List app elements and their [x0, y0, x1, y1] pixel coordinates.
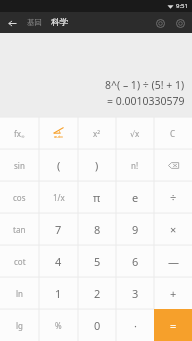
button[interactable]: e	[116, 181, 154, 213]
button[interactable]: ÷	[154, 181, 192, 213]
staticText: 9	[132, 222, 139, 237]
staticText: ln	[16, 288, 24, 299]
staticText: cot	[14, 256, 26, 267]
staticText: 4	[55, 254, 62, 269]
button[interactable]: 1/x	[39, 181, 78, 213]
staticText: —	[168, 254, 179, 269]
button[interactable]: cot	[0, 245, 39, 277]
button[interactable]: ln	[0, 277, 39, 309]
staticText: 8^( – 1) ÷ (5! + 1)	[105, 78, 185, 92]
staticText: 科学	[51, 17, 68, 28]
staticText: √x	[130, 128, 140, 139]
button[interactable]: 6	[116, 245, 154, 277]
staticText: 9:51	[176, 2, 188, 10]
button[interactable]: tan	[0, 213, 39, 245]
staticText: ∞	[21, 134, 25, 139]
button[interactable]: sin	[0, 149, 39, 181]
button[interactable]: Back	[4, 15, 20, 31]
staticText: cos	[13, 192, 26, 203]
button[interactable]: Backspace	[154, 149, 192, 181]
button[interactable]: fx	[0, 117, 39, 149]
button[interactable]: 3	[116, 277, 154, 309]
button[interactable]: lg	[0, 309, 39, 341]
button[interactable]: ·	[116, 309, 154, 341]
staticText: auto	[54, 134, 63, 139]
staticText: x²	[93, 128, 101, 139]
button[interactable]: Angle unit	[39, 117, 78, 149]
button[interactable]: +	[154, 277, 192, 309]
staticText: ×	[170, 222, 177, 237]
staticText: tan	[13, 224, 26, 235]
staticText: π	[93, 190, 101, 205]
staticText: ·	[134, 318, 137, 333]
staticText: lg	[16, 320, 23, 331]
staticText: =	[170, 318, 177, 333]
staticText: )	[95, 158, 99, 173]
button[interactable]: 4	[39, 245, 78, 277]
staticText: +	[170, 286, 177, 301]
button[interactable]: ×	[154, 213, 192, 245]
button[interactable]: 基回	[24, 15, 45, 30]
staticText: 7	[55, 222, 62, 237]
button[interactable]: C	[154, 117, 192, 149]
staticText: e	[132, 190, 139, 205]
staticText: fx	[14, 128, 21, 139]
staticText: %	[55, 320, 62, 331]
button[interactable]: 9	[116, 213, 154, 245]
staticText: 1	[55, 286, 62, 301]
staticText: 基回	[27, 18, 42, 27]
button[interactable]: )	[78, 149, 116, 181]
staticText: 6	[132, 254, 139, 269]
staticText: = 0.0010330579	[107, 94, 185, 108]
button[interactable]: %	[39, 309, 78, 341]
button[interactable]: x²	[78, 117, 116, 149]
button[interactable]: 2	[78, 277, 116, 309]
button[interactable]: cos	[0, 181, 39, 213]
button[interactable]: 1	[39, 277, 78, 309]
button[interactable]: (	[39, 149, 78, 181]
staticText: n!	[131, 160, 139, 171]
button[interactable]: 8	[78, 213, 116, 245]
staticText: 2	[94, 286, 101, 301]
button[interactable]: √x	[116, 117, 154, 149]
button[interactable]: Settings	[173, 16, 187, 30]
button[interactable]: =	[154, 309, 192, 341]
button[interactable]: π	[78, 181, 116, 213]
button[interactable]: 7	[39, 213, 78, 245]
button[interactable]: 5	[78, 245, 116, 277]
staticText: sin	[14, 160, 25, 171]
staticText: 1/x	[53, 192, 65, 203]
button[interactable]: —	[154, 245, 192, 277]
button[interactable]: n!	[116, 149, 154, 181]
staticText: 0	[94, 318, 101, 333]
staticText: 5	[94, 254, 101, 269]
staticText: ÷	[170, 190, 177, 205]
button[interactable]: 科学	[48, 14, 71, 31]
button[interactable]: 0	[78, 309, 116, 341]
staticText: (	[57, 158, 61, 173]
button[interactable]: History	[153, 16, 167, 30]
staticText: 8	[94, 222, 101, 237]
staticText: C	[170, 128, 176, 139]
staticText: 3	[132, 286, 139, 301]
